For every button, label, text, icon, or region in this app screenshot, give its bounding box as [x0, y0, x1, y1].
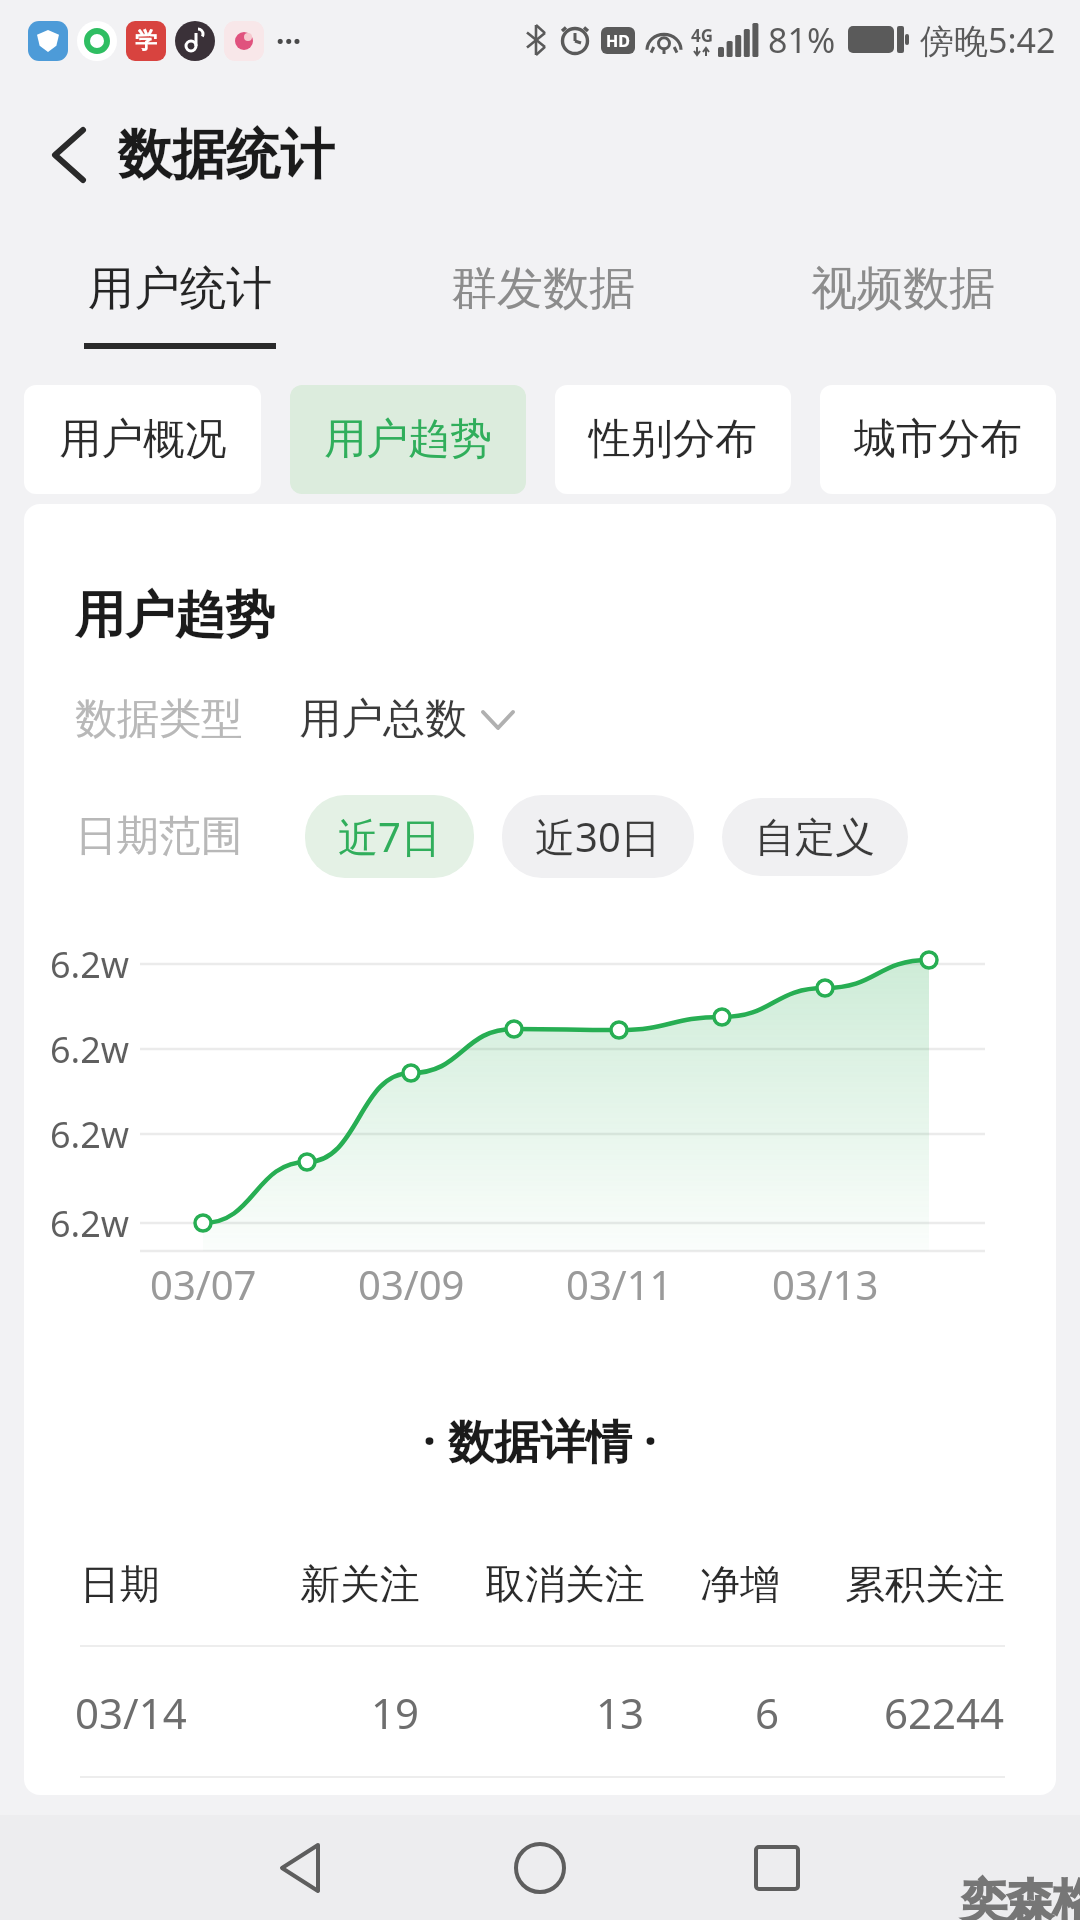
staticText: 取消关注: [485, 1559, 645, 1609]
staticText: 6.2w: [50, 1199, 130, 1248]
staticText: 近30日: [535, 809, 661, 864]
staticText: · 数据详情 ·: [24, 1409, 1056, 1472]
staticText: 03/14: [75, 1684, 187, 1741]
staticText: 6: [755, 1684, 780, 1741]
button[interactable]: 群发数据: [451, 260, 635, 318]
staticText: 62244: [884, 1684, 1005, 1741]
staticText: 日期: [80, 1559, 160, 1609]
staticText: 6.2w: [50, 1025, 130, 1074]
button[interactable]: [255, 1823, 345, 1913]
staticText: 奕森格: [961, 1873, 1080, 1920]
button[interactable]: 近30日: [502, 795, 694, 878]
button[interactable]: 用户概况: [24, 385, 261, 494]
staticText: 03/13: [772, 1257, 879, 1311]
staticText: 学: [135, 27, 157, 55]
button[interactable]: 用户总数: [299, 693, 513, 746]
staticText: 03/07: [150, 1257, 257, 1311]
button[interactable]: 用户趋势: [290, 385, 526, 494]
button[interactable]: 用户统计: [84, 260, 276, 349]
staticText: 6.2w: [50, 1110, 130, 1159]
staticText: 用户趋势: [324, 413, 492, 466]
staticText: 19: [371, 1684, 420, 1741]
staticText: 用户总数: [299, 693, 467, 746]
staticText: 近7日: [338, 809, 441, 864]
staticText: 自定义: [755, 812, 875, 862]
staticText: 81%: [768, 17, 836, 63]
staticText: 城市分布: [854, 413, 1022, 466]
staticText: ···: [276, 20, 302, 61]
button[interactable]: 城市分布: [820, 385, 1056, 494]
staticText: HD: [606, 30, 630, 52]
button[interactable]: 近7日: [305, 795, 474, 878]
staticText: 净增: [700, 1559, 780, 1609]
staticText: 用户统计: [88, 260, 272, 318]
staticText: 6.2w: [50, 940, 130, 989]
button[interactable]: [40, 127, 96, 183]
staticText: 03/11: [566, 1257, 673, 1311]
staticText: 13: [596, 1684, 645, 1741]
staticText: 累积关注: [845, 1559, 1005, 1609]
button[interactable]: 性别分布: [555, 385, 791, 494]
button[interactable]: 03/14: [75, 1684, 1005, 1741]
button[interactable]: [732, 1823, 822, 1913]
button[interactable]: [495, 1823, 585, 1913]
staticText: 4G: [691, 24, 714, 47]
staticText: 数据类型: [75, 693, 243, 746]
staticText: 傍晚5:42: [920, 17, 1056, 63]
button[interactable]: 视频数据: [811, 260, 995, 318]
staticText: 数据统计: [118, 121, 334, 189]
button[interactable]: 自定义: [722, 798, 908, 876]
staticText: 新关注: [300, 1559, 420, 1609]
staticText: 用户趋势: [75, 584, 275, 647]
staticText: 性别分布: [589, 413, 757, 466]
staticText: 日期范围: [75, 810, 243, 863]
staticText: 用户概况: [59, 413, 227, 466]
staticText: 03/09: [358, 1257, 465, 1311]
